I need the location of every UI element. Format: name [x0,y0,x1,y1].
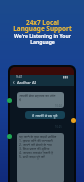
staticText: 10:25 [55,125,62,129]
staticText: We're Listening in Your Language [14,33,71,46]
staticText: 24x7 Local Language Support [13,18,72,33]
staticText: आपकी सेवा सहायता का उत्तर दें [19,93,56,102]
button[interactable]: ‹ [10,79,39,86]
staticText: मैं आपकी से प्रश्न पूछें [32,113,58,118]
staticText: यह करने के कुछ कदमों शामिल 1. कृपया फ़ोन… [19,134,57,159]
staticText: ‹ [13,79,15,86]
other: WhatsApp [7,134,12,139]
other: WhatsApp [7,98,12,103]
staticText: Aadhar AI [17,80,36,85]
staticText: 10:24 [55,104,62,108]
staticText: ▮▮▮ [63,75,69,79]
staticText: 9:41 [16,75,23,79]
other: Notification [71,118,76,123]
